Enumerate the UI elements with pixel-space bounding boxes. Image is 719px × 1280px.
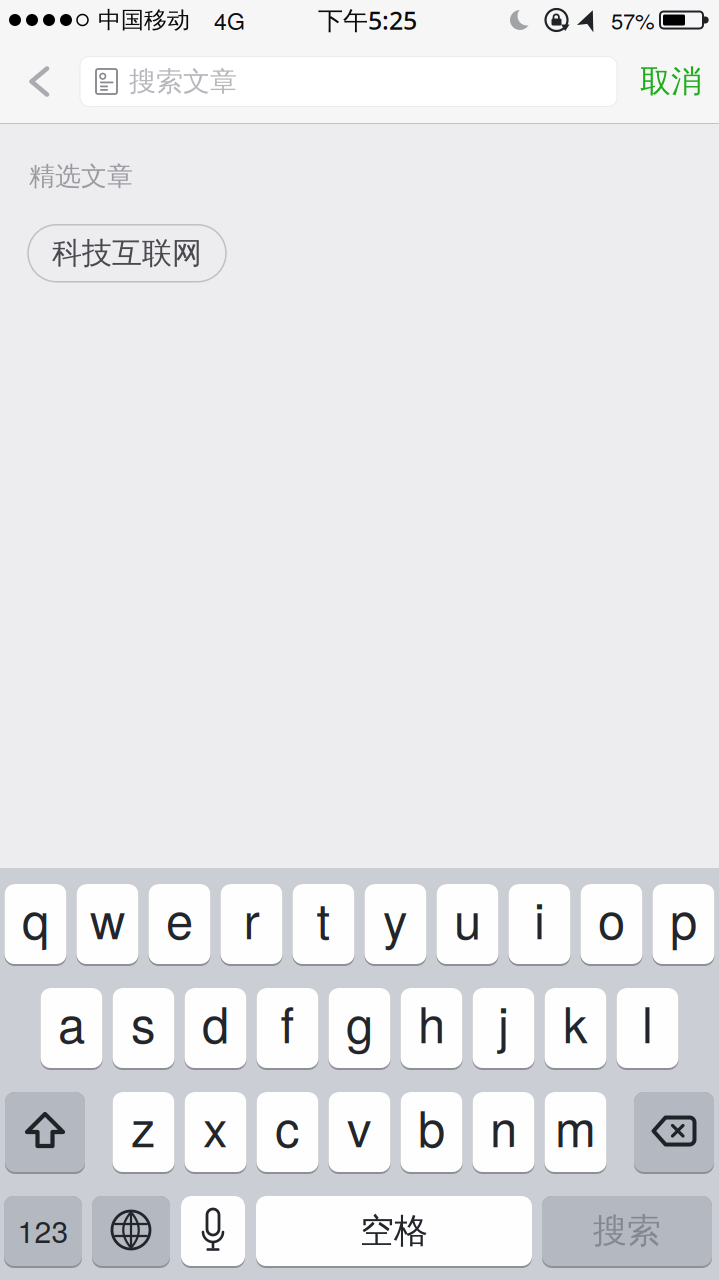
- button[interactable]: e: [148, 884, 210, 966]
- button[interactable]: p: [652, 884, 714, 966]
- staticText: 精选文章: [29, 160, 133, 193]
- staticText: g: [346, 987, 373, 1057]
- staticText: 空格: [360, 1210, 428, 1252]
- staticText: d: [202, 987, 229, 1057]
- staticText: h: [418, 987, 445, 1057]
- staticText: t: [316, 883, 330, 953]
- staticText: a: [58, 987, 85, 1057]
- staticText: o: [598, 883, 625, 953]
- button[interactable]: b: [400, 1092, 462, 1174]
- button[interactable]: 科技互联网: [28, 225, 226, 282]
- button[interactable]: g: [328, 988, 390, 1070]
- button[interactable]: d: [184, 988, 246, 1070]
- button[interactable]: y: [364, 884, 426, 966]
- staticText: m: [555, 1091, 596, 1161]
- button[interactable]: 搜索文章: [80, 56, 617, 106]
- staticText: e: [166, 883, 193, 953]
- button[interactable]: u: [436, 884, 498, 966]
- button[interactable]: s: [112, 988, 174, 1070]
- button[interactable]: 下一个键盘: [92, 1196, 170, 1268]
- staticText: 取消: [640, 62, 702, 101]
- staticText: 科技互联网: [52, 234, 202, 272]
- staticText: 4G: [214, 3, 245, 36]
- button[interactable]: m: [544, 1092, 606, 1174]
- staticText: 下午5:25: [318, 3, 417, 37]
- staticText: r: [243, 883, 259, 953]
- staticText: k: [563, 987, 588, 1057]
- button[interactable]: t: [292, 884, 354, 966]
- button[interactable]: z: [112, 1092, 174, 1174]
- staticText: w: [90, 883, 125, 953]
- button[interactable]: 123: [4, 1196, 82, 1268]
- staticText: 57%: [611, 4, 655, 36]
- button[interactable]: 空格: [256, 1196, 532, 1268]
- button[interactable]: h: [400, 988, 462, 1070]
- button[interactable]: 听写: [181, 1196, 245, 1268]
- staticText: 123: [17, 1208, 68, 1251]
- button[interactable]: n: [472, 1092, 534, 1174]
- staticText: c: [275, 1091, 300, 1161]
- button[interactable]: Shift: [5, 1092, 85, 1174]
- button[interactable]: c: [256, 1092, 318, 1174]
- staticText: 搜索: [593, 1210, 661, 1252]
- button[interactable]: 搜索: [542, 1196, 712, 1268]
- button[interactable]: f: [256, 988, 318, 1070]
- button[interactable]: q: [4, 884, 66, 966]
- staticText: s: [131, 987, 156, 1057]
- button[interactable]: v: [328, 1092, 390, 1174]
- staticText: 搜索文章: [129, 64, 237, 98]
- staticText: q: [22, 883, 49, 953]
- staticText: n: [490, 1091, 517, 1161]
- staticText: z: [131, 1091, 156, 1161]
- button[interactable]: 取消: [617, 62, 719, 101]
- staticText: v: [347, 1091, 372, 1161]
- button[interactable]: l: [616, 988, 678, 1070]
- staticText: f: [280, 987, 294, 1057]
- button[interactable]: j: [472, 988, 534, 1070]
- button[interactable]: 返回: [0, 66, 80, 97]
- button[interactable]: x: [184, 1092, 246, 1174]
- staticText: u: [454, 883, 481, 953]
- button[interactable]: Delete: [634, 1092, 714, 1174]
- staticText: l: [642, 987, 653, 1057]
- staticText: b: [418, 1091, 445, 1161]
- staticText: x: [203, 1091, 228, 1161]
- button[interactable]: a: [40, 988, 102, 1070]
- button[interactable]: o: [580, 884, 642, 966]
- staticText: j: [498, 987, 509, 1057]
- button[interactable]: r: [220, 884, 282, 966]
- staticText: 中国移动: [98, 5, 190, 34]
- button[interactable]: k: [544, 988, 606, 1070]
- button[interactable]: i: [508, 884, 570, 966]
- staticText: p: [670, 883, 697, 953]
- button[interactable]: w: [76, 884, 138, 966]
- staticText: i: [534, 883, 545, 953]
- staticText: y: [383, 883, 408, 953]
